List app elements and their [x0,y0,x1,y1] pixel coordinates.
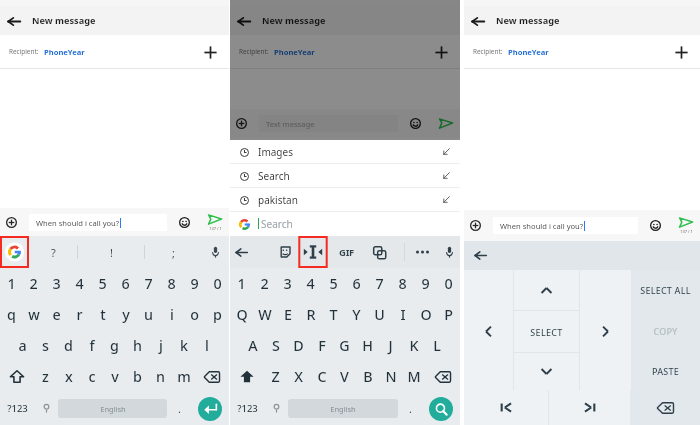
button[interactable]: Text message [259,115,398,132]
button[interactable]: 3 [45,268,68,299]
button[interactable]: 1 [0,268,22,299]
button[interactable]: English [288,399,398,418]
button[interactable]: Backspace [630,390,700,425]
button[interactable]: d [57,330,80,361]
button[interactable]: 0 [206,268,229,299]
button[interactable]: . [167,392,191,425]
button[interactable]: Comma [264,392,288,425]
button[interactable]: Stickers [274,236,296,268]
button[interactable]: J [379,330,402,361]
button[interactable]: Back [464,241,497,270]
button[interactable]: a [11,330,34,361]
button[interactable]: Jump to end [549,390,630,425]
button[interactable]: z [34,361,57,392]
button[interactable]: j [149,330,172,361]
button[interactable]: L [425,330,448,361]
button[interactable]: 7 [368,268,391,299]
button[interactable]: I [391,299,414,330]
button[interactable]: n [149,361,172,392]
button[interactable]: ! [78,236,144,268]
button[interactable]: R [299,299,322,330]
button[interactable]: Emoji [398,109,432,138]
button[interactable]: N [379,361,402,392]
button[interactable]: Send [201,208,229,236]
button[interactable]: r [68,299,91,330]
button[interactable]: Send [672,210,700,241]
button[interactable]: More options [405,236,439,268]
button[interactable]: M [402,361,425,392]
button[interactable]: Backspace [425,361,460,392]
button[interactable]: Emoji [167,208,201,236]
button[interactable]: ?123 [0,392,34,425]
button[interactable]: Jump to start [464,390,548,425]
button[interactable]: . [398,392,422,425]
button[interactable]: i [160,299,183,330]
button[interactable]: 6 [114,268,137,299]
button[interactable]: Backspace [195,361,229,392]
button[interactable]: O [414,299,437,330]
button[interactable]: PASTE [631,352,700,390]
button[interactable]: S [264,330,287,361]
button[interactable]: W [253,299,276,330]
button[interactable]: 4 [299,268,322,299]
button[interactable]: Translate [362,236,396,268]
button[interactable]: 5 [322,268,345,299]
button[interactable]: w [22,299,45,330]
button[interactable]: p [206,299,229,330]
button[interactable]: ?123 [230,392,264,425]
button[interactable]: 3 [276,268,299,299]
button[interactable]: 4 [68,268,91,299]
button[interactable]: Back [4,11,24,31]
button[interactable]: 2 [253,268,276,299]
button[interactable]: When should i call you? [29,214,167,231]
button[interactable]: 2 [22,268,45,299]
button[interactable]: pakistan [230,188,460,211]
button[interactable]: Back [230,236,253,268]
button[interactable]: COPY [631,310,700,352]
button[interactable]: Search [230,212,460,235]
button[interactable]: Search [230,164,460,187]
button[interactable]: Y [345,299,368,330]
button[interactable]: e [45,299,68,330]
button[interactable]: v [103,361,126,392]
button[interactable]: b [126,361,149,392]
button[interactable]: Send [432,109,460,138]
button[interactable]: Move down [514,353,579,390]
button[interactable]: Shift [230,361,264,392]
button[interactable]: 0 [437,268,460,299]
button[interactable]: u [137,299,160,330]
button[interactable]: Move right [580,310,631,352]
button[interactable]: 7 [137,268,160,299]
button[interactable]: Enter [198,397,222,421]
button[interactable]: Z [264,361,287,392]
button[interactable]: g [103,330,126,361]
button[interactable]: x [57,361,80,392]
button[interactable]: 5 [91,268,114,299]
button[interactable]: 9 [414,268,437,299]
button[interactable]: l [195,330,218,361]
button[interactable]: Shift [0,361,34,392]
button[interactable]: c [80,361,103,392]
button[interactable]: SELECT ALL [631,270,700,310]
button[interactable]: C [310,361,333,392]
button[interactable]: s [34,330,57,361]
button[interactable]: o [183,299,206,330]
button[interactable]: T [322,299,345,330]
button[interactable]: q [0,299,22,330]
button[interactable]: A [241,330,264,361]
button[interactable]: ; [145,236,201,268]
button[interactable]: Move up [514,270,579,310]
button[interactable]: Search [429,397,453,421]
button[interactable]: ? [29,236,77,268]
button[interactable]: U [368,299,391,330]
button[interactable]: Comma [34,392,58,425]
button[interactable]: Voice input [201,236,229,268]
button[interactable]: Add recipient [431,42,451,62]
button[interactable]: G [333,330,356,361]
button[interactable]: Add recipient [200,42,220,62]
button[interactable]: Google [0,236,29,268]
button[interactable]: K [402,330,425,361]
button[interactable]: SELECT [514,311,579,352]
button[interactable]: Attach [230,109,253,138]
button[interactable]: 1 [230,268,253,299]
